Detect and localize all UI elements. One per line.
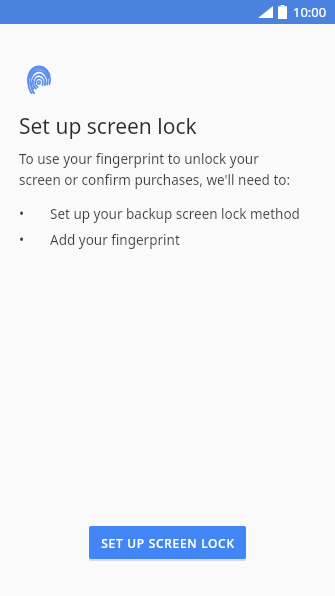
staticText: • [19,205,25,223]
staticText: Set up your backup screen lock method [50,205,300,223]
button[interactable]: SET UP SCREEN LOCK [89,526,246,559]
staticText: To use your fingerprint to unlock your s… [19,150,291,189]
staticText: 10:00 [293,3,327,21]
staticText: • [19,231,25,249]
staticText: Add your fingerprint [50,231,180,249]
staticText: Set up screen lock [19,112,197,141]
staticText: SET UP SCREEN LOCK [101,535,235,551]
